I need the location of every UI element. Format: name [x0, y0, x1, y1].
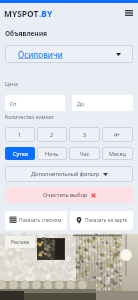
- staticText: 1: [18, 131, 22, 138]
- staticText: Показать на карте: [85, 217, 128, 224]
- button[interactable]: От: [5, 95, 65, 111]
- staticText: Осиповичи: [18, 49, 63, 60]
- staticText: Дополнительный фильтр: [31, 170, 100, 178]
- button[interactable]: MYSPOT: [4, 8, 53, 19]
- button[interactable]: Очистить выбор: [5, 187, 133, 203]
- staticText: До: [77, 100, 85, 107]
- staticText: .BY: [39, 8, 53, 19]
- staticText: Цена: [5, 80, 18, 87]
- staticText: Показать списком: [19, 217, 62, 224]
- button[interactable]: Осиповичи: [5, 45, 133, 63]
- button[interactable]: Ночь: [37, 147, 67, 160]
- staticText: 3: [83, 131, 87, 138]
- button[interactable]: Месяц: [102, 147, 133, 160]
- staticText: Реклама: [11, 239, 30, 245]
- staticText: Очистить выбор: [43, 191, 88, 199]
- staticText: Объявления: [5, 29, 48, 38]
- staticText: Сутки: [13, 150, 28, 157]
- staticText: Количество комнат: [5, 113, 54, 120]
- staticText: От: [10, 100, 17, 107]
- button[interactable]: Сутки: [5, 147, 35, 160]
- button[interactable]: 1: [5, 127, 35, 142]
- button[interactable]: Menu: [122, 6, 135, 19]
- button[interactable]: Дополнительный фильтр: [5, 166, 133, 182]
- button[interactable]: 3: [69, 127, 100, 142]
- staticText: 4+: [114, 131, 121, 138]
- staticText: 2: [50, 131, 54, 138]
- button[interactable]: Показать на карте: [70, 211, 133, 230]
- staticText: Месяц: [109, 150, 126, 157]
- button[interactable]: 4+: [102, 127, 133, 142]
- staticText: Ночь: [45, 150, 59, 157]
- button[interactable]: До: [72, 95, 133, 111]
- button[interactable]: 2: [37, 127, 67, 142]
- staticText: Час: [80, 150, 90, 157]
- button[interactable]: Показать списком: [5, 211, 67, 230]
- staticText: MYSPOT: [4, 8, 39, 19]
- button[interactable]: Час: [69, 147, 100, 160]
